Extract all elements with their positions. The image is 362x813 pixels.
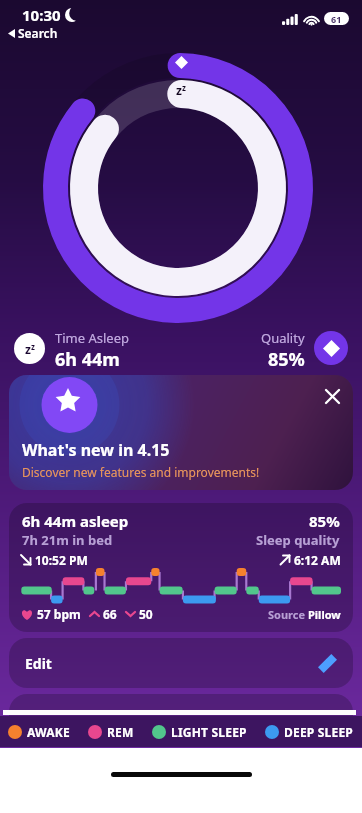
staticText: 66 — [103, 606, 117, 622]
staticText: 57 bpm — [37, 606, 81, 622]
staticText: z — [31, 341, 35, 352]
staticText: 85% — [309, 511, 340, 531]
staticText: 7h 21m in bed — [22, 531, 113, 549]
button[interactable]: REM — [88, 724, 134, 740]
staticText: 85% — [268, 347, 305, 367]
staticText: z — [25, 341, 31, 357]
button[interactable]: What's new in 4.15 — [9, 375, 353, 490]
staticText: Edit — [25, 654, 52, 673]
staticText: z — [176, 82, 182, 98]
staticText: AWAKE — [27, 724, 70, 740]
staticText: 50 — [139, 606, 153, 622]
staticText: REM — [107, 724, 134, 740]
staticText: 6h 44m asleep — [22, 511, 129, 531]
staticText: 10:30 — [22, 5, 61, 25]
button[interactable] — [9, 694, 353, 734]
staticText: Pillow — [308, 607, 341, 622]
staticText: Discover new features and improvements! — [22, 464, 260, 480]
staticText: Quality — [261, 329, 305, 347]
staticText: LIGHT SLEEP — [171, 724, 247, 740]
staticText: Search — [18, 25, 58, 41]
staticText: DEEP SLEEP — [284, 724, 354, 740]
button[interactable]: Close — [318, 382, 346, 410]
staticText: Sleep quality — [256, 531, 340, 549]
staticText: Time Asleep — [55, 329, 129, 347]
staticText: z — [182, 82, 186, 93]
button[interactable]: 6h 44m asleep — [9, 503, 353, 632]
staticText: 6h 44m — [55, 347, 120, 367]
staticText: 10:52 PM — [35, 552, 88, 568]
button[interactable]: AWAKE — [8, 724, 70, 740]
staticText: What's new in 4.15 — [22, 439, 170, 461]
staticText: 61 — [331, 13, 342, 25]
staticText: Source — [268, 607, 308, 622]
staticText: 6:12 AM — [294, 552, 341, 568]
button[interactable]: Edit — [9, 638, 353, 688]
button[interactable]: DEEP SLEEP — [265, 724, 354, 740]
button[interactable]: LIGHT SLEEP — [152, 724, 247, 740]
